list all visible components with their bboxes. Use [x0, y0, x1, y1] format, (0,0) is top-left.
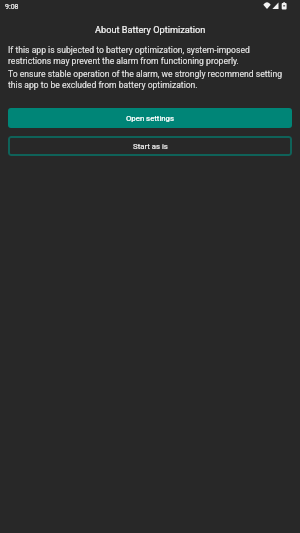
- staticText: Open settings: [126, 114, 174, 123]
- staticText: 9:08: [5, 3, 19, 11]
- staticText: About Battery Optimization: [95, 24, 206, 35]
- staticText: Start as is: [133, 142, 168, 151]
- button[interactable]: Open settings: [8, 108, 292, 128]
- button[interactable]: Start as is: [8, 136, 292, 156]
- staticText: If this app is subjected to battery opti…: [8, 45, 290, 66]
- staticText: To ensure stable operation of the alarm,…: [8, 69, 290, 90]
